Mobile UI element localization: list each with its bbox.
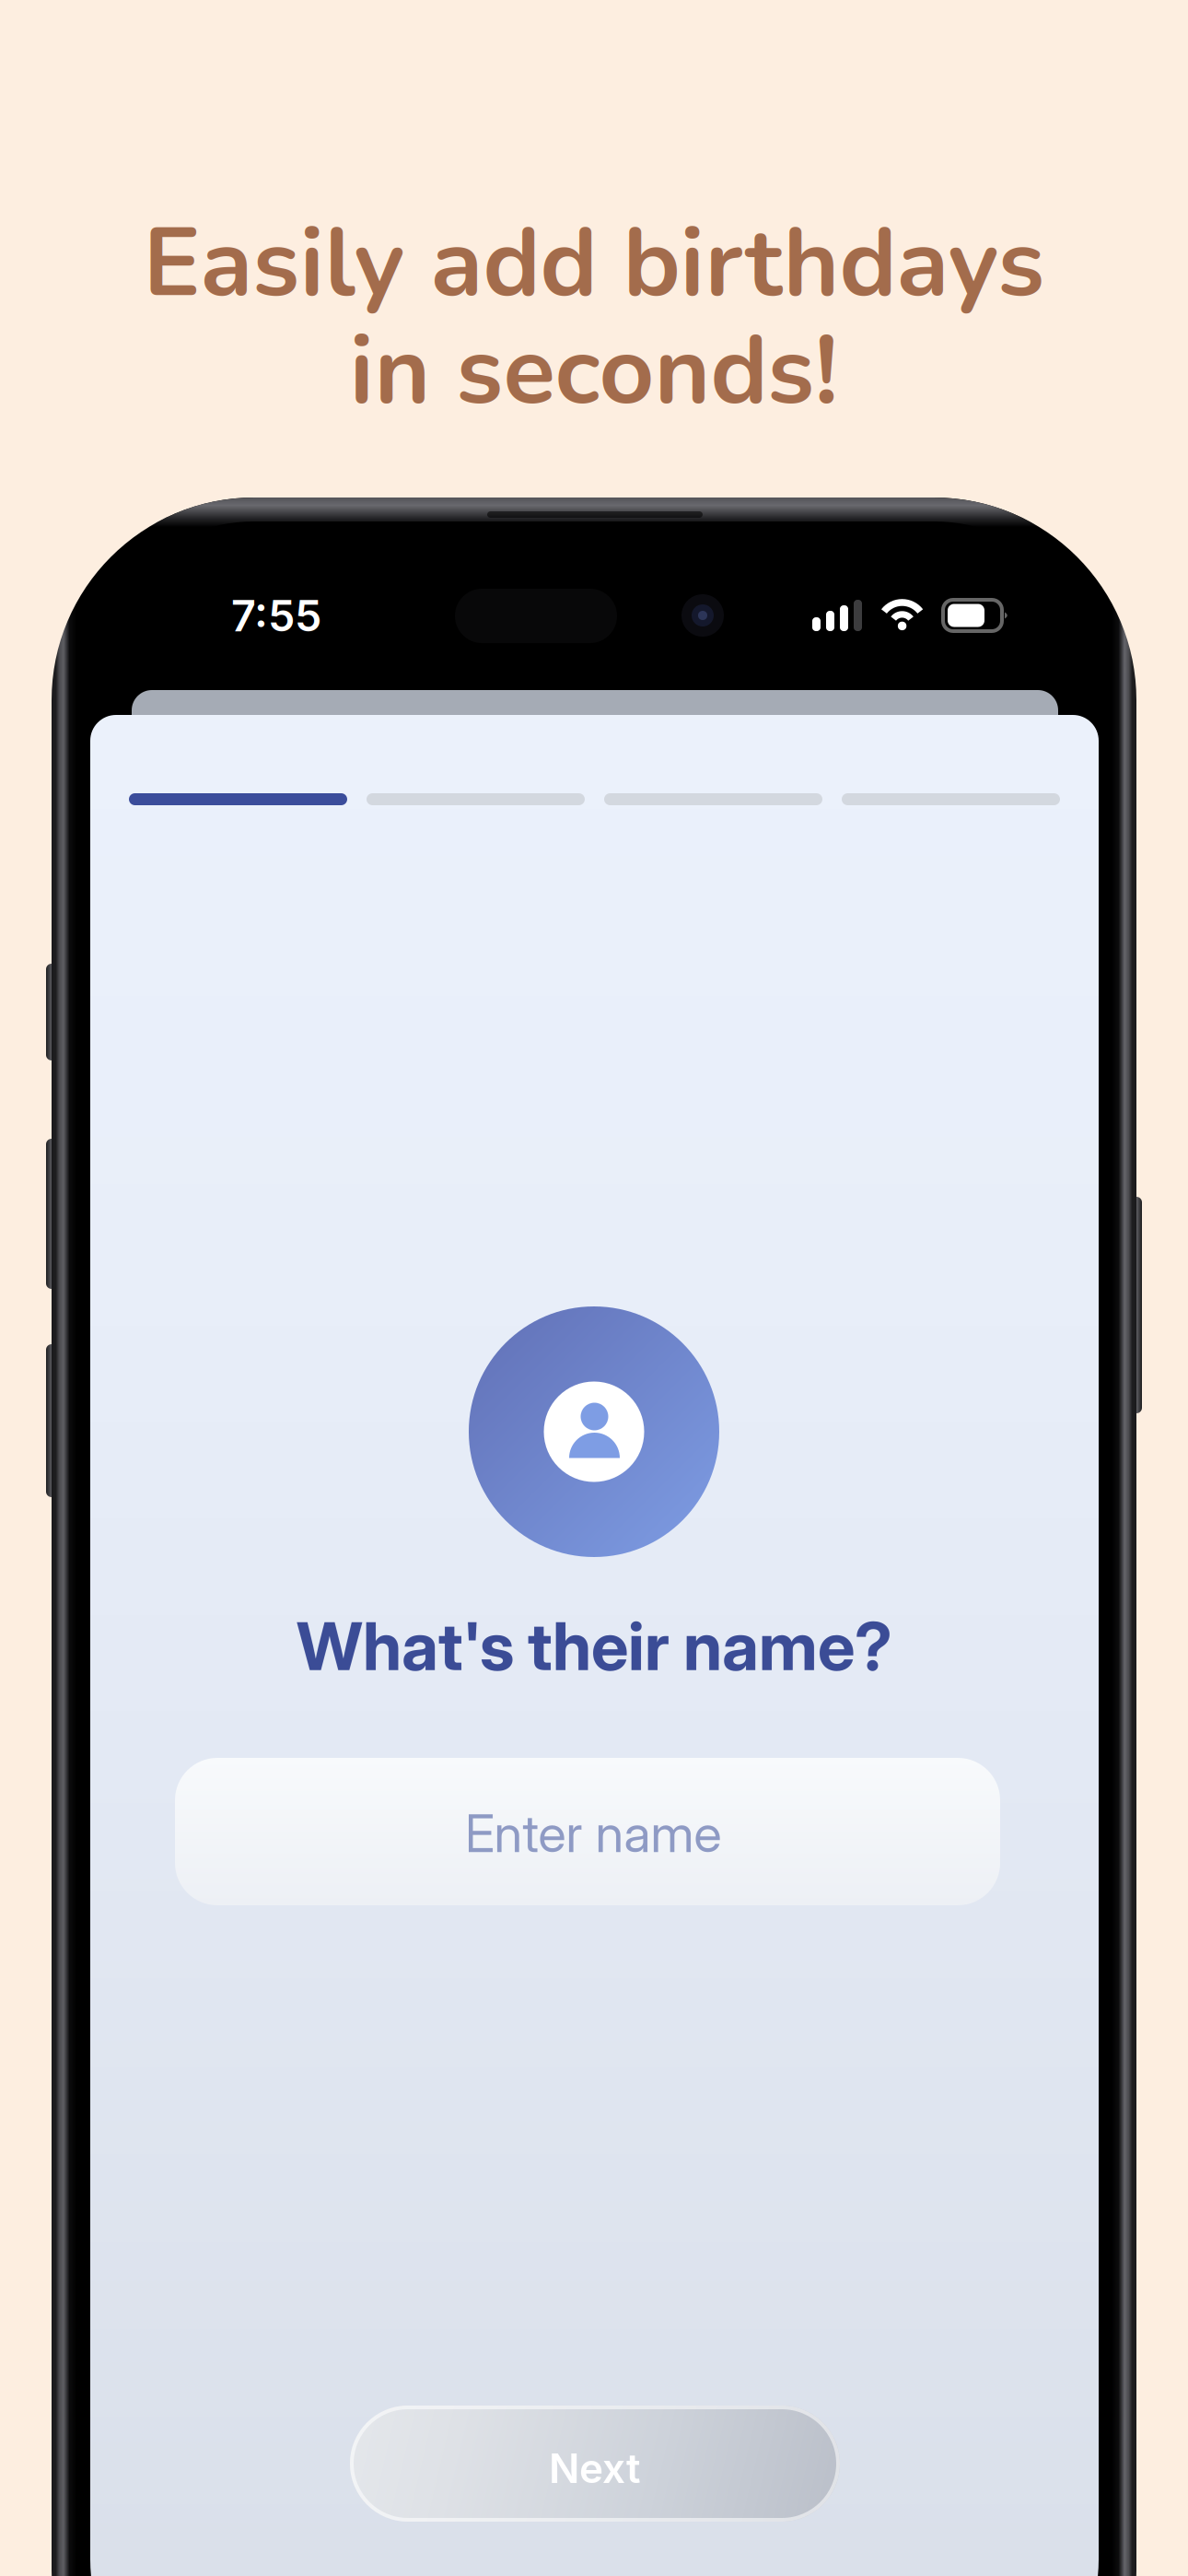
staticText: 7:55 [231,590,321,642]
staticText: What's their name? [297,1606,892,1686]
staticText: Next [549,2444,641,2493]
staticText: Enter name [465,1802,722,1865]
staticText: Easily add birthdays [143,198,1045,329]
button[interactable]: Enter name [175,1758,1000,1905]
staticText: in seconds! [349,306,839,437]
button[interactable]: Next [350,2406,840,2522]
